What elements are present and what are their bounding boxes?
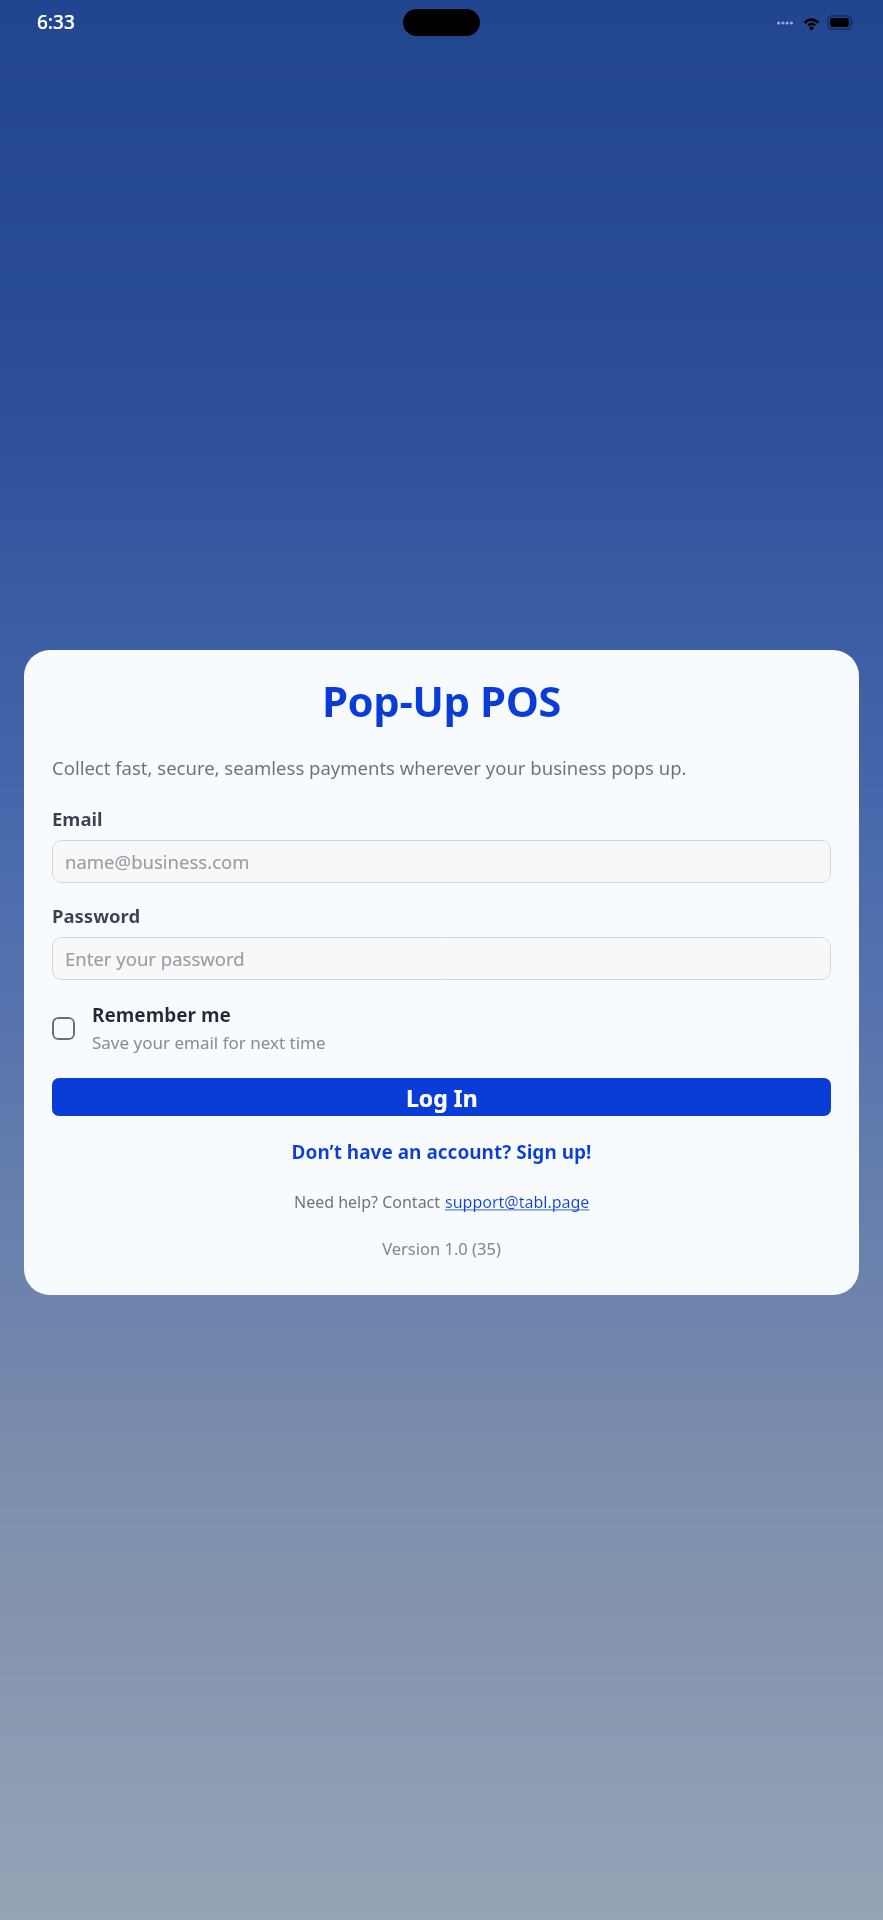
staticText: Collect fast, secure, seamless payments … xyxy=(52,755,831,780)
staticText: Don’t have an account? Sign up! xyxy=(52,1139,831,1165)
staticText: name@business.com xyxy=(65,849,250,874)
staticText: Password xyxy=(52,903,141,928)
staticText: Email xyxy=(52,806,103,831)
staticText: Need help? Contact xyxy=(294,1191,445,1213)
button[interactable]: Log In xyxy=(52,1078,831,1116)
staticText: support@tabl.page xyxy=(445,1191,590,1213)
button[interactable]: support@tabl.page xyxy=(445,1191,590,1213)
staticText: Version 1.0 (35) xyxy=(52,1237,831,1259)
staticText: Enter your password xyxy=(65,946,245,971)
other: Remember me checkbox xyxy=(52,1017,75,1040)
button[interactable]: Remember me checkbox xyxy=(52,1000,831,1056)
staticText: Remember me xyxy=(92,1002,231,1028)
button[interactable]: Don’t have an account? Sign up! xyxy=(52,1135,831,1169)
staticText: Pop-Up POS xyxy=(52,672,831,729)
button[interactable]: Enter your password xyxy=(52,937,831,980)
button[interactable]: name@business.com xyxy=(52,840,831,883)
staticText: 6:33 xyxy=(37,9,75,35)
staticText: Log In xyxy=(406,1082,478,1113)
staticText: Save your email for next time xyxy=(92,1031,326,1054)
